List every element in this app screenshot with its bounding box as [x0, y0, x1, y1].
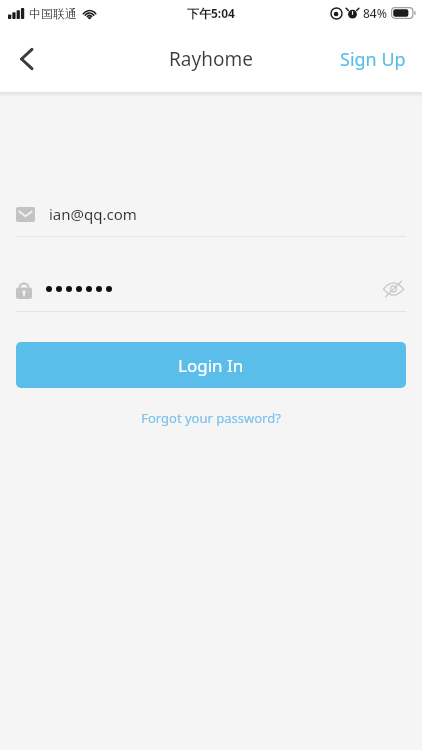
button[interactable]: Forgot your password? [123, 403, 299, 433]
button[interactable]: Sign Up [324, 35, 422, 84]
button[interactable]: Password field [0, 273, 422, 312]
staticText: Login In [178, 354, 244, 377]
button[interactable]: Back [0, 33, 52, 85]
staticText: Sign Up [340, 47, 406, 72]
staticText: 下午5:04 [187, 5, 235, 21]
staticText: Forgot your password? [141, 409, 281, 427]
staticText: 中国联通 [29, 6, 77, 21]
staticText: 84% [363, 5, 387, 21]
button[interactable]: Login In [16, 342, 406, 388]
staticText: ian@qq.com [49, 204, 137, 224]
button[interactable]: Show password [380, 276, 406, 302]
button[interactable]: Email field [0, 198, 422, 237]
staticText: Rayhome [169, 46, 253, 72]
